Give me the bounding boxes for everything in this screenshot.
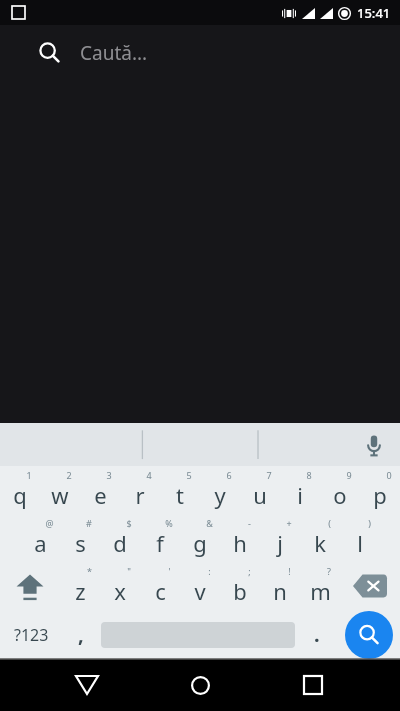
button[interactable]: 0 bbox=[360, 466, 400, 514]
staticText: + bbox=[286, 517, 292, 529]
staticText: 8 bbox=[306, 469, 312, 481]
staticText: o bbox=[333, 480, 347, 510]
button[interactable]: , bbox=[63, 610, 99, 659]
button[interactable]: 8 bbox=[280, 466, 320, 514]
staticText: p bbox=[373, 480, 387, 510]
staticText: t bbox=[176, 480, 184, 510]
button[interactable]: ! bbox=[260, 562, 300, 610]
staticText: ! bbox=[288, 565, 291, 577]
staticText: v bbox=[194, 576, 206, 606]
other: Search bbox=[38, 41, 62, 65]
button[interactable]: ) bbox=[340, 514, 380, 562]
staticText: h bbox=[233, 528, 247, 558]
staticText: 7 bbox=[266, 469, 272, 481]
button[interactable]: + bbox=[260, 514, 300, 562]
staticText: z bbox=[75, 576, 86, 606]
staticText: ?123 bbox=[14, 624, 49, 646]
button[interactable]: # bbox=[60, 514, 100, 562]
button[interactable]: % bbox=[140, 514, 180, 562]
button[interactable]: ?123 bbox=[0, 610, 63, 659]
button[interactable]: & bbox=[180, 514, 220, 562]
staticText: k bbox=[314, 528, 326, 558]
staticText: f bbox=[156, 528, 164, 558]
button[interactable]: Search bbox=[337, 610, 400, 659]
staticText: a bbox=[34, 528, 47, 558]
staticText: x bbox=[114, 576, 126, 606]
staticText: u bbox=[253, 480, 267, 510]
staticText: b bbox=[233, 576, 247, 606]
staticText: ) bbox=[368, 517, 371, 529]
staticText: - bbox=[248, 517, 251, 529]
button[interactable]: * bbox=[60, 562, 100, 610]
staticText: @ bbox=[45, 517, 54, 529]
button[interactable]: Backspace bbox=[340, 562, 400, 610]
button[interactable]: Home bbox=[174, 659, 226, 711]
staticText: c bbox=[155, 576, 166, 606]
staticText: 2 bbox=[66, 469, 72, 481]
staticText: 4 bbox=[146, 469, 152, 481]
button[interactable]: 4 bbox=[120, 466, 160, 514]
staticText: ; bbox=[248, 565, 251, 577]
staticText: ' bbox=[168, 565, 171, 577]
button[interactable]: Back bbox=[61, 659, 113, 711]
staticText: m bbox=[310, 576, 331, 606]
staticText: ( bbox=[328, 517, 331, 529]
staticText: s bbox=[75, 528, 86, 558]
button[interactable]: . bbox=[297, 610, 337, 659]
staticText: , bbox=[78, 621, 84, 648]
staticText: 15:41 bbox=[357, 4, 391, 22]
button[interactable]: @ bbox=[20, 514, 60, 562]
staticText: 5 bbox=[186, 469, 192, 481]
button[interactable]: 1 bbox=[0, 466, 40, 514]
staticText: w bbox=[51, 480, 69, 510]
staticText: : bbox=[208, 565, 211, 577]
button[interactable]: - bbox=[220, 514, 260, 562]
button[interactable]: ? bbox=[300, 562, 340, 610]
button[interactable]: Shift bbox=[0, 562, 60, 610]
button[interactable]: ( bbox=[300, 514, 340, 562]
staticText: e bbox=[94, 480, 107, 510]
button[interactable]: ' bbox=[140, 562, 180, 610]
staticText: i bbox=[297, 480, 303, 510]
staticText: # bbox=[86, 517, 92, 529]
staticText: g bbox=[193, 528, 207, 558]
staticText: * bbox=[87, 565, 92, 577]
staticText: ? bbox=[327, 565, 331, 577]
button[interactable]: Recents bbox=[287, 659, 339, 711]
staticText: Caută... bbox=[80, 40, 148, 66]
button[interactable]: 9 bbox=[320, 466, 360, 514]
button[interactable]: 3 bbox=[80, 466, 120, 514]
staticText: n bbox=[273, 576, 287, 606]
staticText: $ bbox=[126, 517, 132, 529]
button[interactable]: ; bbox=[220, 562, 260, 610]
staticText: d bbox=[113, 528, 127, 558]
button[interactable]: Space bbox=[99, 610, 297, 659]
button[interactable]: Search bbox=[0, 25, 400, 81]
button[interactable]: 6 bbox=[200, 466, 240, 514]
staticText: & bbox=[206, 517, 213, 529]
staticText: l bbox=[357, 528, 363, 558]
staticText: 3 bbox=[106, 469, 112, 481]
button[interactable]: 7 bbox=[240, 466, 280, 514]
staticText: 1 bbox=[26, 469, 32, 481]
staticText: . bbox=[314, 621, 320, 648]
button[interactable]: " bbox=[100, 562, 140, 610]
staticText: 9 bbox=[346, 469, 352, 481]
staticText: 0 bbox=[386, 469, 392, 481]
button[interactable]: $ bbox=[100, 514, 140, 562]
staticText: 6 bbox=[226, 469, 232, 481]
staticText: % bbox=[165, 517, 173, 529]
staticText: r bbox=[135, 480, 145, 510]
staticText: y bbox=[214, 480, 226, 510]
staticText: " bbox=[127, 565, 131, 577]
staticText: q bbox=[13, 480, 27, 510]
staticText: j bbox=[277, 528, 283, 558]
button[interactable]: 5 bbox=[160, 466, 200, 514]
button[interactable]: : bbox=[180, 562, 220, 610]
button[interactable]: Voice input bbox=[360, 431, 388, 459]
button[interactable]: 2 bbox=[40, 466, 80, 514]
